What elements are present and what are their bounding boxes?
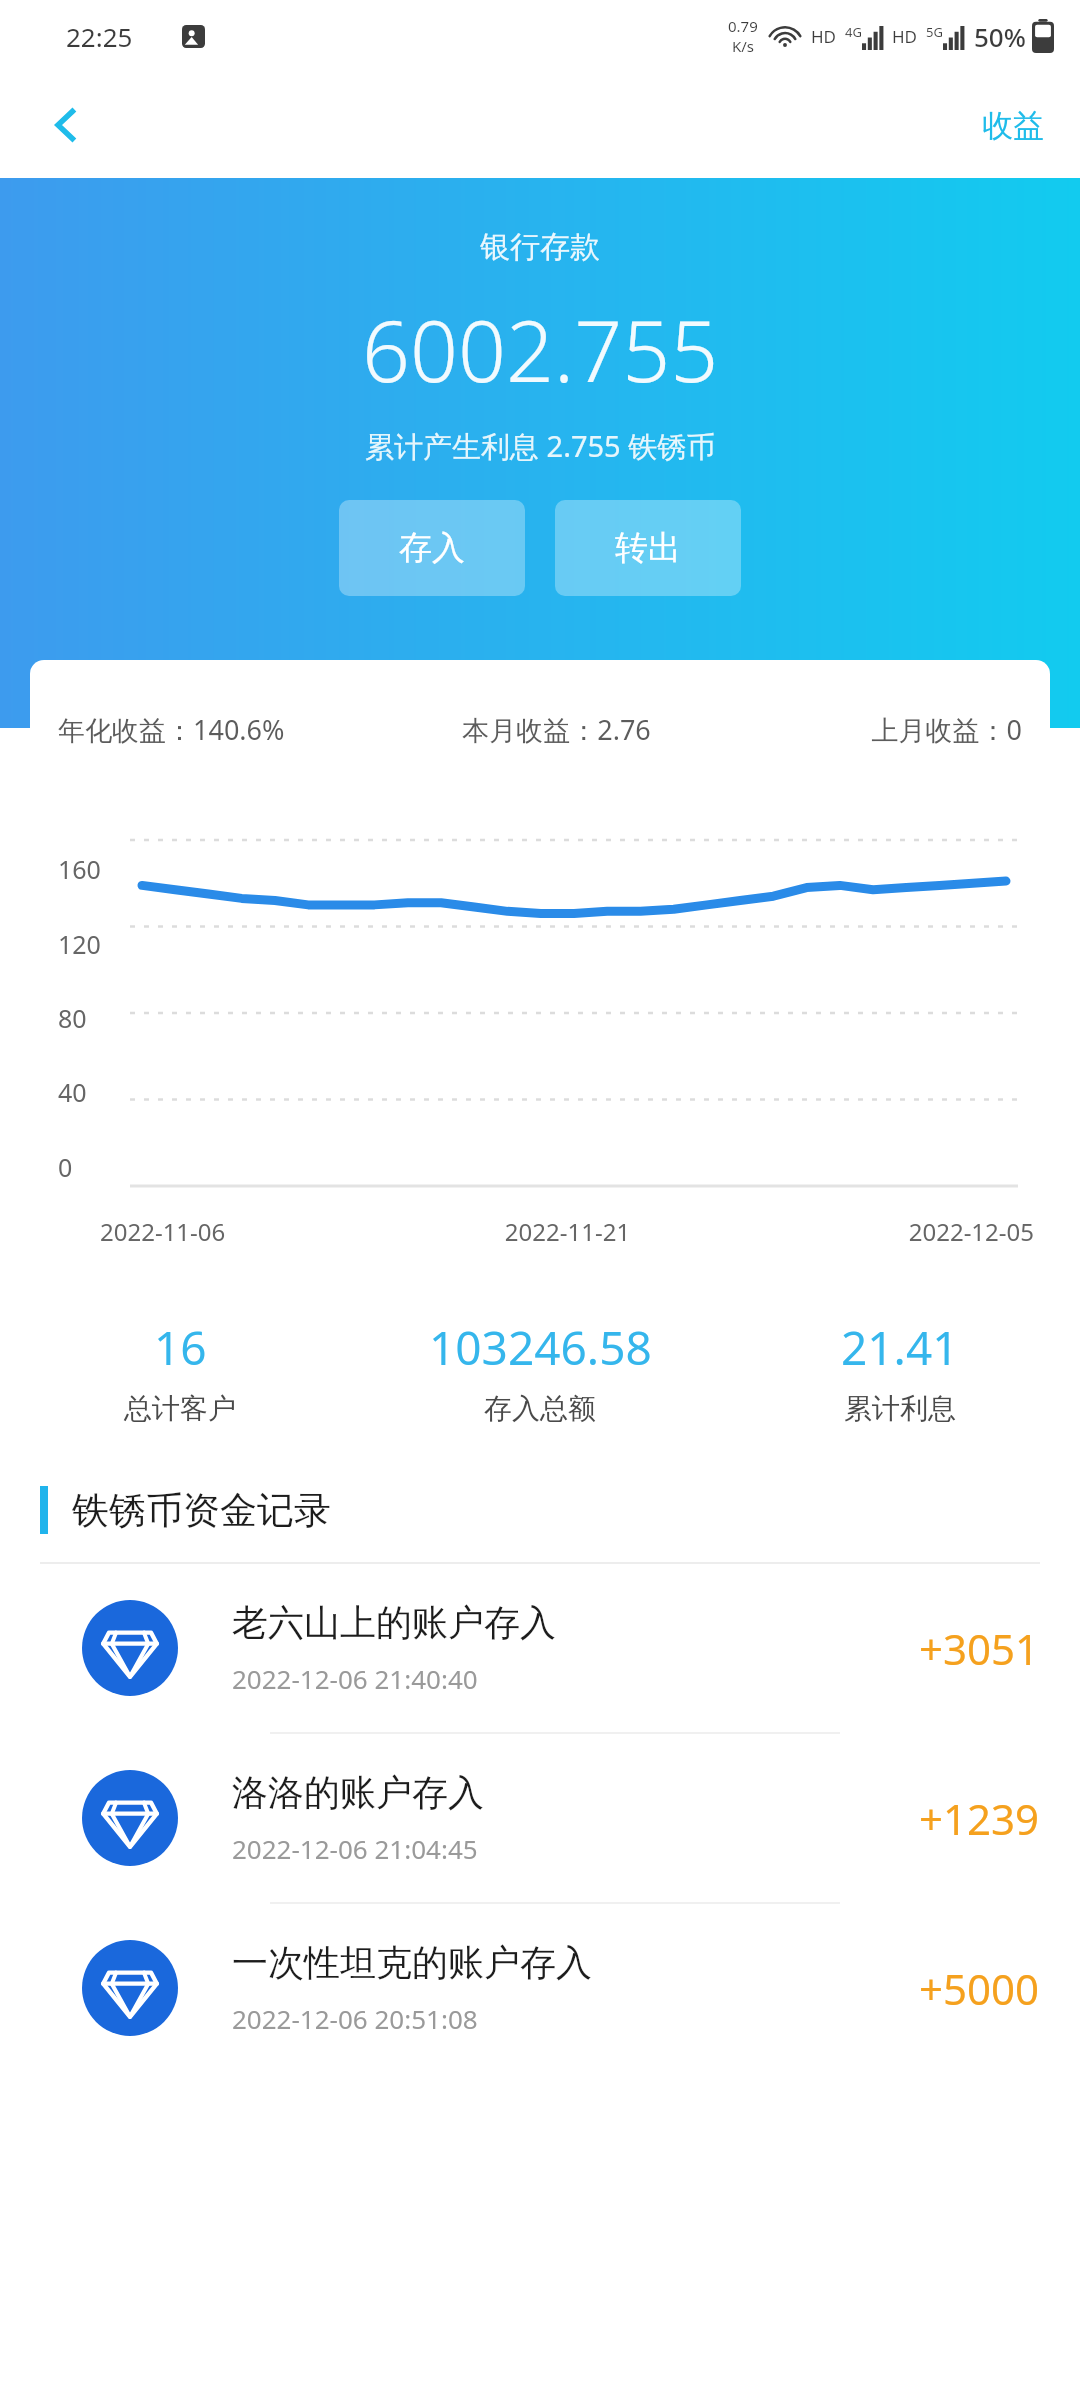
staticText: 累计利息 — [844, 1391, 956, 1426]
staticText: 2022-12-05 — [723, 1215, 1034, 1248]
staticText: 80 — [58, 1001, 87, 1035]
staticText: 21.41 — [841, 1316, 959, 1379]
staticText: K/s — [732, 36, 755, 56]
staticText: 16 — [154, 1316, 207, 1379]
staticText: HD — [811, 25, 837, 48]
staticText: 2022-12-06 21:04:45 — [232, 1831, 478, 1866]
staticText: 0 — [58, 1150, 73, 1184]
button[interactable]: 转出 — [555, 500, 741, 596]
staticText: 累计产生利息 2.755 铁锈币 — [365, 426, 716, 466]
button[interactable]: Back — [34, 93, 98, 157]
button[interactable]: 16 — [0, 1316, 360, 1426]
staticText: 铁锈币资金记录 — [72, 1487, 331, 1534]
staticText: +3051 — [919, 1620, 1040, 1677]
staticText: 4G — [845, 23, 862, 41]
staticText: 老六山上的账户存入 — [232, 1600, 556, 1645]
staticText: 50% — [974, 19, 1026, 54]
staticText: 银行存款 — [480, 228, 600, 266]
staticText: 总计客户 — [124, 1391, 236, 1426]
button[interactable]: 老六山上的账户存入 — [0, 1564, 1080, 1732]
staticText: 2022-12-06 20:51:08 — [232, 2001, 478, 2036]
staticText: 收益 — [982, 106, 1044, 145]
staticText: 120 — [58, 927, 101, 961]
staticText: 存入 — [399, 527, 465, 569]
button[interactable]: 21.41 — [720, 1316, 1080, 1426]
staticText: 转出 — [615, 527, 681, 569]
staticText: 洛洛的账户存入 — [232, 1770, 484, 1815]
button[interactable]: 年化收益：140.6% — [30, 660, 1050, 798]
staticText: +5000 — [919, 1960, 1040, 2017]
staticText: 年化收益：140.6% — [58, 711, 396, 748]
staticText: 103246.58 — [429, 1316, 652, 1379]
button[interactable]: 存入 — [339, 500, 525, 596]
staticText: 160 — [58, 852, 101, 886]
staticText: 5G — [926, 23, 943, 41]
staticText: 上月收益：0 — [717, 711, 1022, 748]
staticText: 22:25 — [66, 19, 133, 54]
button[interactable]: 收益 — [946, 92, 1080, 159]
button[interactable]: 103246.58 — [360, 1316, 720, 1426]
staticText: 0.79 — [728, 16, 758, 36]
staticText: 6002.755 — [362, 292, 719, 406]
staticText: 2022-11-06 — [100, 1215, 412, 1248]
staticText: 本月收益：2.76 — [396, 711, 717, 748]
button[interactable]: 洛洛的账户存入 — [0, 1734, 1080, 1902]
staticText: 40 — [58, 1075, 87, 1109]
button[interactable]: 一次性坦克的账户存入 — [0, 1904, 1080, 2072]
staticText: 2022-11-21 — [412, 1215, 723, 1248]
staticText: 一次性坦克的账户存入 — [232, 1940, 592, 1985]
staticText: 2022-12-06 21:40:40 — [232, 1661, 478, 1696]
staticText: HD — [892, 25, 918, 48]
staticText: 存入总额 — [484, 1391, 596, 1426]
staticText: +1239 — [919, 1790, 1040, 1847]
